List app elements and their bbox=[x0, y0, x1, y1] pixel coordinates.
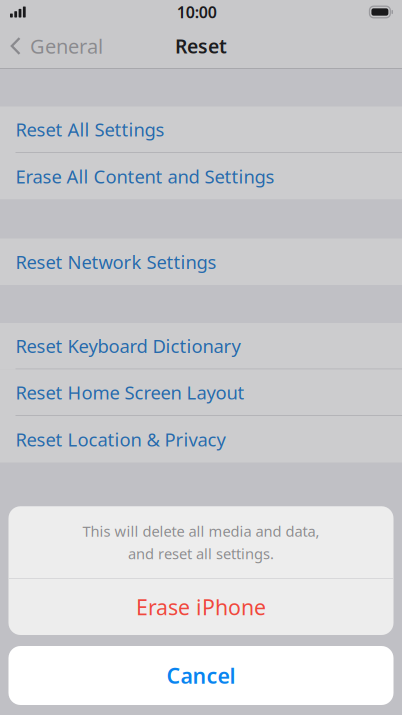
staticText: 10:00 bbox=[177, 1, 217, 23]
staticText: Reset Network Settings bbox=[15, 249, 216, 274]
button[interactable]: Erase iPhone bbox=[8, 579, 393, 635]
button[interactable]: Erase All Content and Settings bbox=[0, 153, 402, 199]
button[interactable]: Reset Home Screen Layout bbox=[0, 369, 402, 416]
staticText: Reset Keyboard Dictionary bbox=[15, 333, 240, 358]
button[interactable]: Reset Keyboard Dictionary bbox=[0, 323, 402, 369]
staticText: Reset All Settings bbox=[15, 117, 164, 142]
staticText: This will delete all media and data, bbox=[82, 521, 319, 541]
staticText: Erase All Content and Settings bbox=[15, 164, 274, 189]
button[interactable]: Reset Network Settings bbox=[0, 238, 402, 285]
button[interactable]: Reset All Settings bbox=[0, 106, 402, 153]
button[interactable]: Reset Location & Privacy bbox=[0, 416, 402, 462]
button[interactable]: Back to General bbox=[0, 24, 111, 68]
staticText: Reset Home Screen Layout bbox=[15, 380, 244, 405]
button[interactable]: Cancel bbox=[8, 646, 393, 705]
staticText: Erase iPhone bbox=[136, 593, 266, 621]
staticText: Reset bbox=[175, 33, 227, 59]
staticText: and reset all settings. bbox=[128, 544, 274, 563]
staticText: Reset Location & Privacy bbox=[15, 427, 225, 452]
staticText: Cancel bbox=[166, 661, 235, 690]
staticText: General bbox=[30, 33, 103, 59]
